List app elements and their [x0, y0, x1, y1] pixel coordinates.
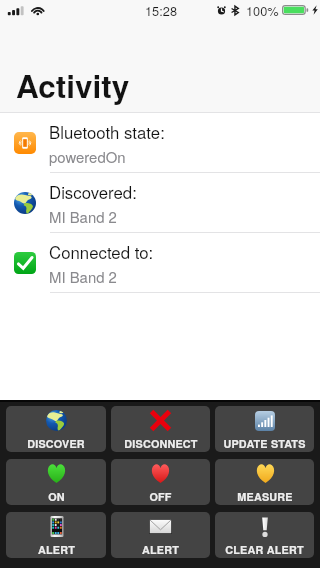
staticText: 15:28: [145, 1, 178, 19]
other: Alarm set: [217, 5, 226, 15]
staticText: poweredOn: [49, 146, 126, 167]
button[interactable]: Connected to:: [0, 233, 320, 292]
staticText: DISCONNECT: [124, 436, 198, 451]
button[interactable]: DISCONNECT: [111, 406, 210, 452]
button[interactable]: Discovered:: [0, 173, 320, 232]
staticText: Connected to:: [49, 240, 154, 264]
button[interactable]: ON: [6, 459, 106, 505]
staticText: Activity: [16, 63, 130, 108]
staticText: UPDATE STATS: [223, 436, 306, 451]
button[interactable]: OFF: [111, 459, 210, 505]
staticText: OFF: [149, 489, 172, 504]
other: Battery full: [282, 5, 309, 15]
staticText: 100%: [246, 1, 279, 19]
button[interactable]: ALERT: [111, 512, 210, 558]
other: Charging: [312, 5, 318, 15]
other: Bluetooth on: [232, 6, 239, 15]
staticText: CLEAR ALERT: [225, 542, 304, 557]
button[interactable]: UPDATE STATS: [215, 406, 314, 452]
staticText: MI Band 2: [49, 266, 117, 287]
button[interactable]: ALERT: [6, 512, 106, 558]
staticText: Bluetooth state:: [49, 120, 165, 144]
button[interactable]: Bluetooth state:: [0, 113, 320, 172]
staticText: ALERT: [142, 542, 179, 557]
staticText: ALERT: [38, 542, 75, 557]
button[interactable]: CLEAR ALERT: [215, 512, 314, 558]
staticText: MEASURE: [237, 489, 293, 504]
staticText: ON: [48, 489, 65, 504]
button[interactable]: MEASURE: [215, 459, 314, 505]
staticText: MI Band 2: [49, 206, 117, 227]
staticText: Discovered:: [49, 180, 137, 204]
staticText: DISCOVER: [27, 436, 85, 451]
button[interactable]: DISCOVER: [6, 406, 106, 452]
